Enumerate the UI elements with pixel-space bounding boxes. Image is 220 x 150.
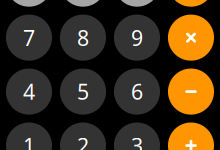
staticText: 1 <box>23 131 35 150</box>
button[interactable]: Plus <box>168 122 214 150</box>
button[interactable]: Nine <box>114 15 160 61</box>
button[interactable]: Four <box>6 68 52 115</box>
button[interactable]: Two <box>60 122 106 150</box>
button[interactable]: Three <box>114 122 160 150</box>
button[interactable]: Percent <box>114 0 160 7</box>
staticText: 4 <box>23 77 35 106</box>
button[interactable]: Seven <box>6 15 52 61</box>
button[interactable]: Eight <box>60 15 106 61</box>
staticText: 3 <box>131 131 143 150</box>
button[interactable]: One <box>6 122 52 150</box>
staticText: 7 <box>23 23 35 52</box>
button[interactable]: Plus minus <box>60 0 106 7</box>
staticText: 5 <box>77 77 89 106</box>
button[interactable]: Minus <box>168 68 214 115</box>
button[interactable]: Divide <box>168 0 214 7</box>
staticText: 8 <box>77 23 89 52</box>
staticText: 9 <box>131 23 143 52</box>
staticText: 6 <box>131 77 143 106</box>
button[interactable]: All clear <box>6 0 52 7</box>
staticText: 2 <box>77 131 89 150</box>
button[interactable]: Multiply <box>168 15 214 61</box>
button[interactable]: Six <box>114 68 160 115</box>
button[interactable]: Five <box>60 68 106 115</box>
